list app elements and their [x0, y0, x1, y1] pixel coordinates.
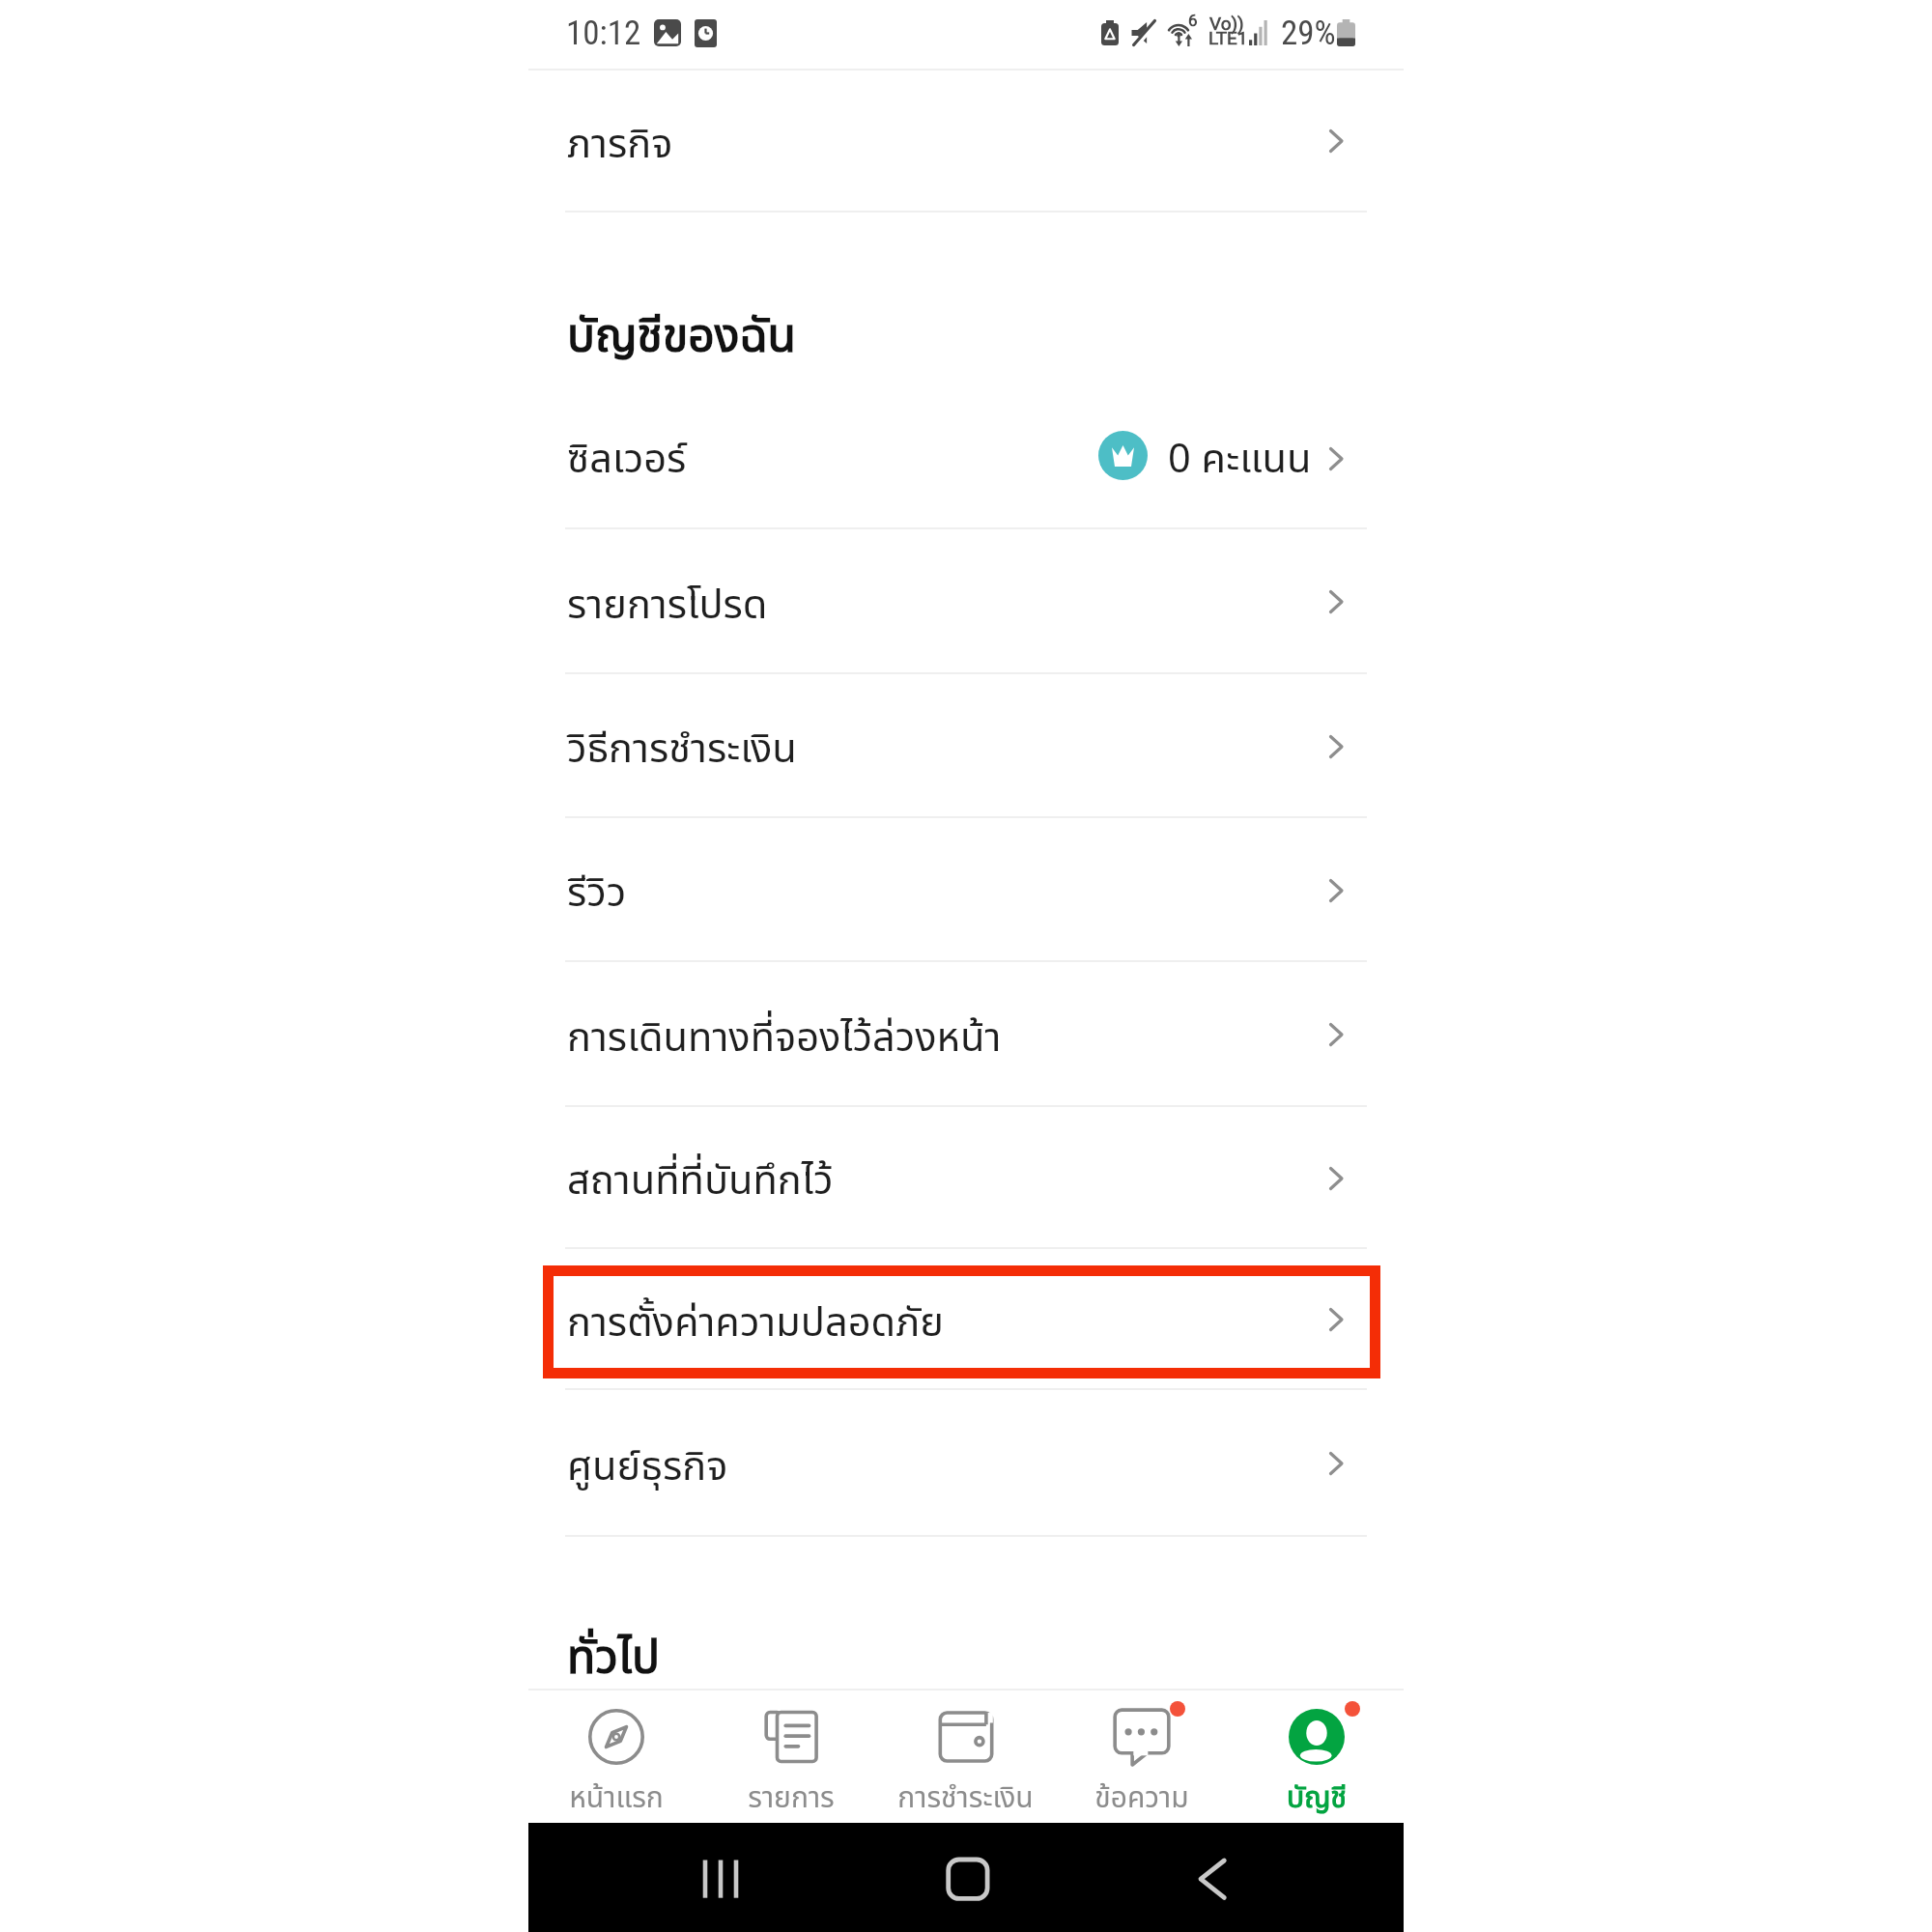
- staticText: การชำระเงิน: [897, 1776, 1034, 1820]
- staticText: สถานที่ที่บันทึกไว้: [567, 1151, 834, 1212]
- staticText: 6: [1188, 11, 1198, 30]
- staticText: ข้อความ: [1094, 1776, 1189, 1820]
- staticText: 0 คะแนน: [1168, 430, 1312, 491]
- staticText: วิธีการชำระเงิน: [567, 720, 797, 781]
- button[interactable]: บัญชี: [1229, 1690, 1404, 1823]
- button[interactable]: Back: [1195, 1854, 1245, 1904]
- staticText: รายการ: [748, 1776, 835, 1820]
- staticText: ทั่วไป: [567, 1624, 660, 1694]
- staticText: หน้าแรก: [569, 1776, 664, 1820]
- button[interactable]: Home: [943, 1854, 993, 1904]
- button[interactable]: Recents: [697, 1854, 748, 1904]
- staticText: การเดินทางที่จองไว้ล่วงหน้า: [567, 1009, 1002, 1069]
- staticText: บัญชี: [1287, 1776, 1347, 1820]
- button[interactable]: รายการโปรด: [528, 528, 1404, 673]
- staticText: รายการโปรด: [567, 576, 768, 637]
- staticText: 29%: [1281, 14, 1336, 53]
- button[interactable]: ข้อความ: [1054, 1690, 1229, 1823]
- staticText: ภารกิจ: [567, 115, 673, 176]
- button[interactable]: รีวิว: [528, 817, 1404, 961]
- button[interactable]: หน้าแรก: [528, 1690, 703, 1823]
- staticText: การตั้งค่าความปลอดภัย: [567, 1293, 944, 1354]
- staticText: ซิลเวอร์: [567, 430, 687, 491]
- button[interactable]: ซิลเวอร์: [528, 386, 1404, 528]
- button[interactable]: วิธีการชำระเงิน: [528, 673, 1404, 817]
- staticText: ศูนย์ธุรกิจ: [567, 1437, 728, 1498]
- button[interactable]: ศูนย์ธุรกิจ: [528, 1389, 1404, 1536]
- staticText: Vo)): [1209, 13, 1244, 34]
- button[interactable]: ภารกิจ: [528, 69, 1404, 212]
- button[interactable]: การตั้งค่าความปลอดภัย: [528, 1248, 1404, 1389]
- button[interactable]: การเดินทางที่จองไว้ล่วงหน้า: [528, 961, 1404, 1106]
- button[interactable]: การชำระเงิน: [878, 1690, 1053, 1823]
- staticText: บัญชีของฉัน: [567, 302, 797, 373]
- button[interactable]: สถานที่ที่บันทึกไว้: [528, 1106, 1404, 1248]
- staticText: LTE1: [1208, 27, 1248, 48]
- staticText: 10:12: [566, 14, 641, 53]
- staticText: รีวิว: [567, 864, 627, 924]
- button[interactable]: รายการ: [703, 1690, 878, 1823]
